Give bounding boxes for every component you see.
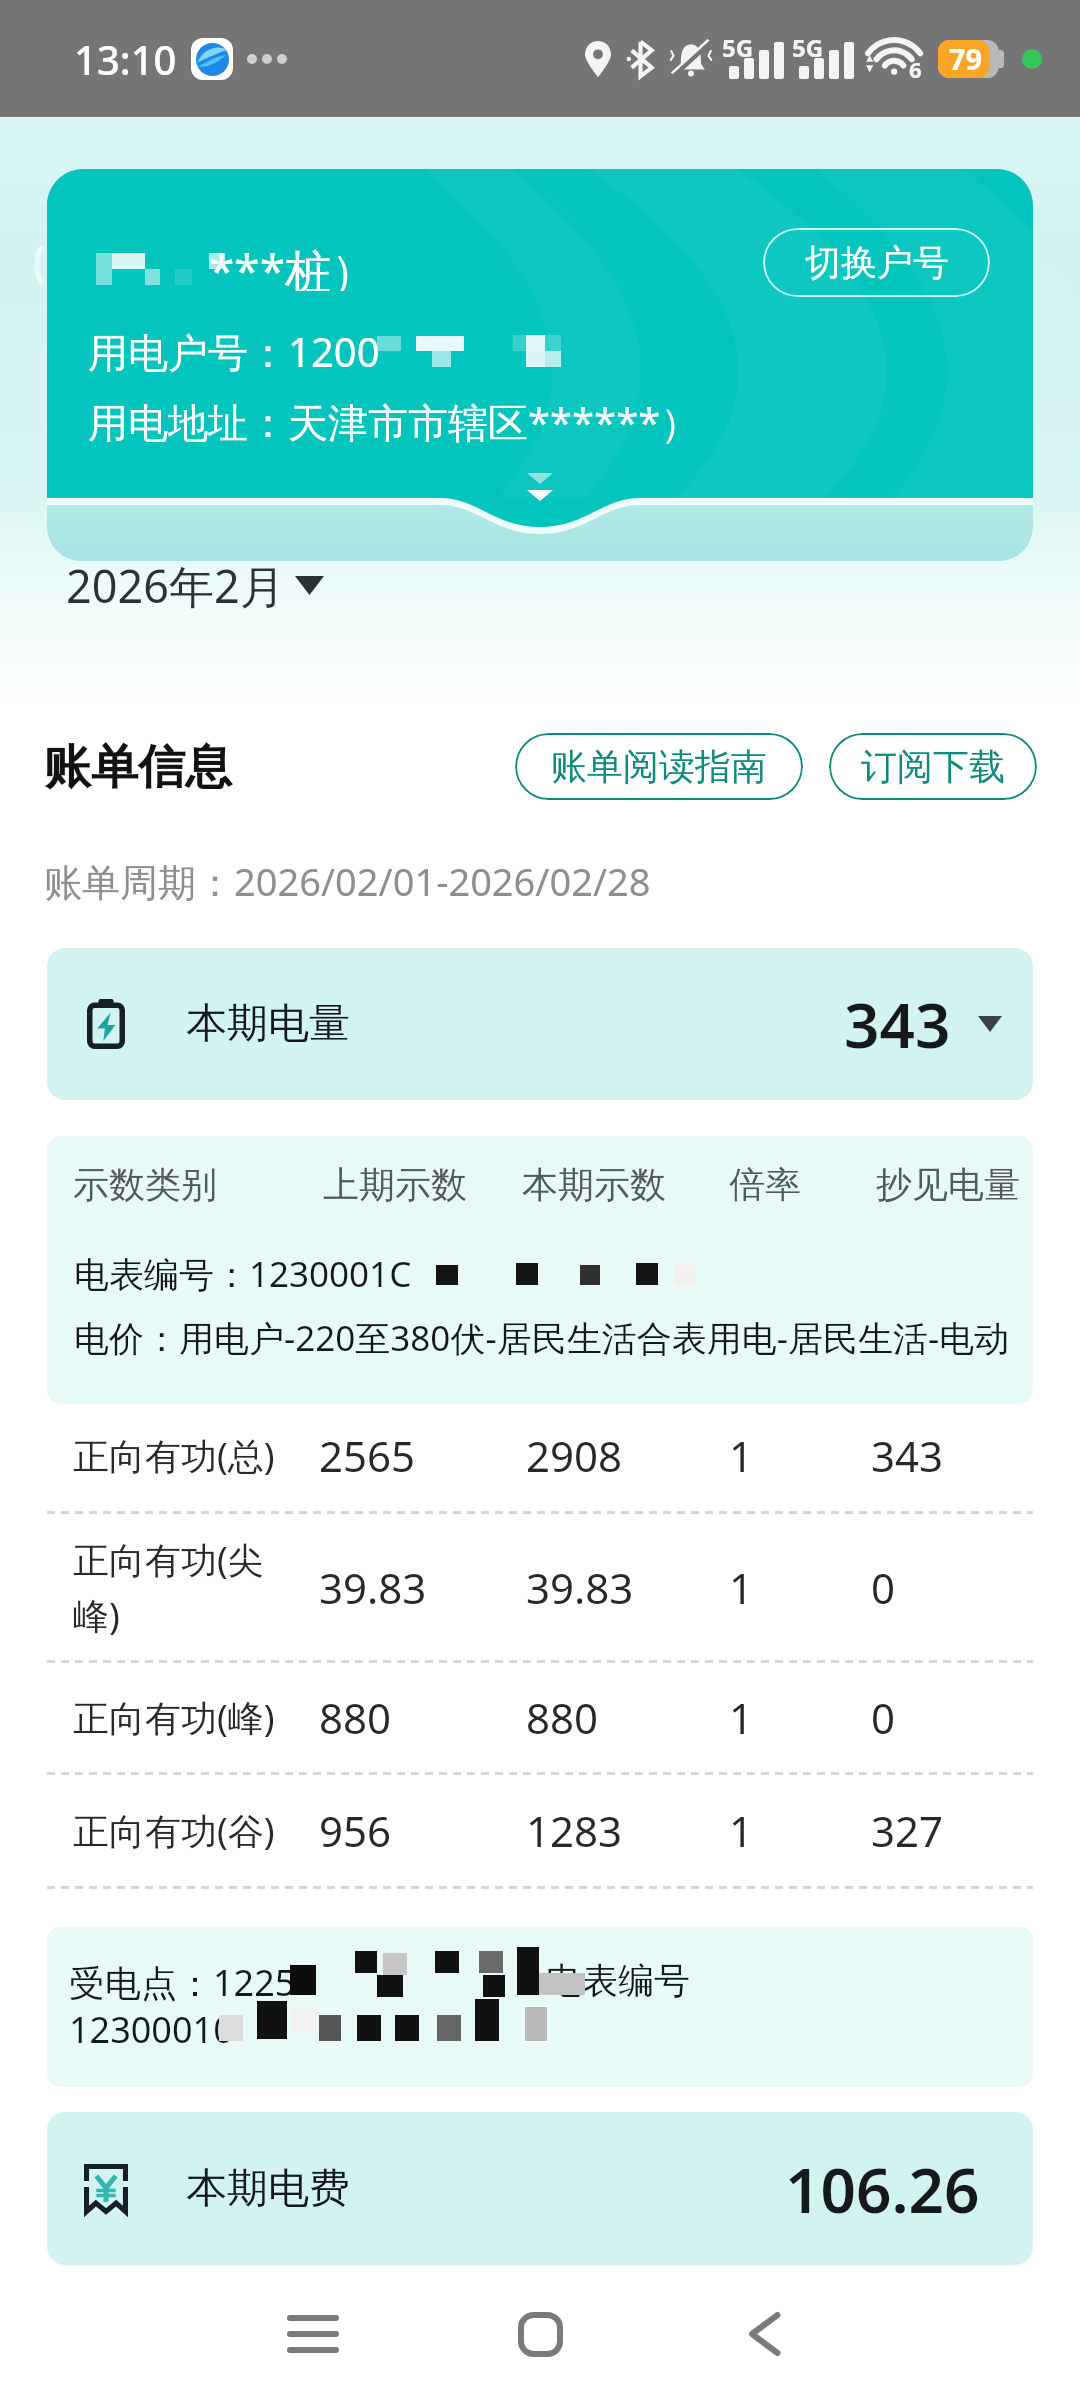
staticText: 956 bbox=[319, 1802, 392, 1859]
staticText: 1 bbox=[729, 1427, 754, 1484]
staticText: 账单信息 bbox=[44, 738, 232, 797]
staticText: 0 bbox=[871, 1559, 896, 1616]
staticText: 正向有功(谷) bbox=[73, 1806, 275, 1855]
staticText: 1 bbox=[729, 1802, 754, 1859]
staticText: 电价：用电户-220至380伏-居民生活合表用电-居民生活-电动汽车充电 bbox=[74, 1314, 1033, 1362]
staticText: 880 bbox=[526, 1689, 599, 1746]
staticText: 用电户号：1200 bbox=[88, 324, 380, 374]
button[interactable]: 本期电量 bbox=[47, 948, 1033, 1100]
staticText: 13:10 bbox=[74, 32, 177, 86]
staticText: 1 bbox=[729, 1559, 754, 1616]
staticText: 1 bbox=[729, 1689, 754, 1746]
button[interactable]: 切换户号 bbox=[763, 228, 990, 297]
staticText: 6 bbox=[909, 54, 922, 84]
staticText: 正向有功(峰) bbox=[73, 1693, 275, 1742]
staticText: 327 bbox=[871, 1802, 944, 1859]
staticText: 39.83 bbox=[526, 1559, 634, 1616]
button[interactable]: 本期电费 bbox=[47, 2112, 1033, 2265]
staticText: 用电地址：天津市市辖区******） bbox=[88, 394, 701, 444]
staticText: 电表编号 bbox=[546, 1958, 690, 2003]
staticText: 切换户号 bbox=[805, 240, 949, 285]
button[interactable]: Recent apps bbox=[243, 2264, 383, 2400]
staticText: 电表编号：1230001C bbox=[74, 1250, 412, 1298]
staticText: 倍率 bbox=[729, 1162, 801, 1207]
staticText: 2026年2月 bbox=[66, 555, 285, 616]
button[interactable]: Back bbox=[694, 2264, 834, 2400]
staticText: 本期示数 bbox=[522, 1162, 666, 1207]
staticText: 1283 bbox=[526, 1802, 623, 1859]
staticText: 106.26 bbox=[785, 2147, 980, 2231]
staticText: 本期电费 bbox=[186, 2163, 350, 2215]
button[interactable]: Home bbox=[470, 2264, 610, 2400]
staticText: 2908 bbox=[526, 1427, 623, 1484]
staticText: 5G bbox=[792, 31, 824, 64]
staticText: 示数类别 bbox=[73, 1162, 217, 1207]
staticText: 抄见电量 bbox=[876, 1162, 1020, 1207]
staticText: 39.83 bbox=[319, 1559, 427, 1616]
staticText: 343 bbox=[844, 982, 951, 1066]
staticText: 343 bbox=[871, 1427, 944, 1484]
button[interactable]: Expand details bbox=[512, 460, 568, 516]
button[interactable]: 账单阅读指南 bbox=[515, 733, 803, 800]
staticText: 账单周期：2026/02/01-2026/02/28 bbox=[44, 855, 651, 907]
staticText: 受电点：1225 bbox=[69, 1958, 296, 2007]
staticText: 2565 bbox=[319, 1427, 416, 1484]
staticText: 79 bbox=[949, 39, 983, 78]
staticText: 12300010 bbox=[69, 2005, 234, 2054]
staticText: 880 bbox=[319, 1689, 392, 1746]
staticText: 订阅下载 bbox=[861, 744, 1005, 789]
staticText: 上期示数 bbox=[323, 1162, 467, 1207]
staticText: 5G bbox=[722, 31, 754, 64]
staticText: 正向有功(尖 峰) bbox=[73, 1535, 264, 1640]
button[interactable]: 2026年2月 bbox=[58, 547, 332, 624]
staticText: 账单阅读指南 bbox=[551, 744, 767, 789]
staticText: ***桩） bbox=[209, 239, 378, 291]
button[interactable]: 订阅下载 bbox=[829, 733, 1037, 800]
staticText: 0 bbox=[871, 1689, 896, 1746]
staticText: 正向有功(总) bbox=[73, 1431, 275, 1480]
staticText: 本期电量 bbox=[186, 998, 350, 1050]
